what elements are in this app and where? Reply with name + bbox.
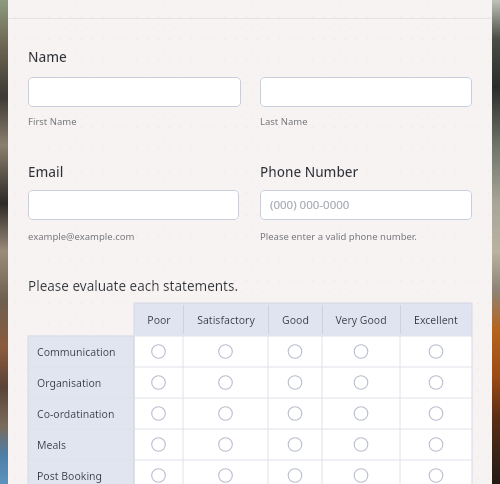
button[interactable]: Meals — Poor — [134, 429, 183, 460]
staticText: example@example.com — [28, 230, 135, 243]
staticText: Communication — [37, 345, 116, 359]
button[interactable]: Co-ordatination — Satisfactory — [183, 398, 268, 429]
button[interactable]: Communication — Satisfactory — [183, 336, 268, 367]
button[interactable]: Poor — [134, 303, 183, 336]
staticText: Please evaluate each statements. — [28, 277, 239, 295]
button[interactable]: Phone Number input — [260, 190, 472, 220]
staticText: Meals — [37, 438, 67, 452]
staticText: Phone Number — [260, 163, 359, 181]
button[interactable]: Organisation — Poor — [134, 367, 183, 398]
button[interactable]: First Name input — [28, 77, 241, 107]
staticText: Organisation — [37, 376, 102, 390]
staticText: Good — [282, 313, 309, 327]
staticText: Satisfactory — [197, 313, 255, 327]
button[interactable]: Meals — Excellent — [400, 429, 472, 460]
button[interactable]: Organisation — [28, 367, 134, 398]
button[interactable]: Communication — Good — [268, 336, 322, 367]
button[interactable]: Post Booking — Good — [268, 460, 322, 484]
button[interactable]: Co-ordatination — Very Good — [322, 398, 400, 429]
button[interactable]: Meals — Very Good — [322, 429, 400, 460]
button[interactable]: Post Booking — Very Good — [322, 460, 400, 484]
button[interactable]: Organisation — Excellent — [400, 367, 472, 398]
button[interactable]: Good — [268, 303, 322, 336]
button[interactable]: Communication — Very Good — [322, 336, 400, 367]
button[interactable]: Organisation — Good — [268, 367, 322, 398]
button[interactable]: Communication — Excellent — [400, 336, 472, 367]
button[interactable]: Organisation — Satisfactory — [183, 367, 268, 398]
staticText: Last Name — [260, 115, 308, 128]
staticText: Name — [28, 48, 67, 66]
staticText: First Name — [28, 115, 77, 128]
button[interactable]: Co-ordatination — Good — [268, 398, 322, 429]
button[interactable]: Very Good — [322, 303, 400, 336]
button[interactable]: Organisation — Very Good — [322, 367, 400, 398]
button[interactable]: Post Booking — Excellent — [400, 460, 472, 484]
staticText: Excellent — [414, 313, 458, 327]
staticText: Post Booking — [37, 469, 103, 483]
button[interactable]: Co-ordatination — Poor — [134, 398, 183, 429]
staticText: Poor — [147, 313, 171, 327]
button[interactable]: Meals — Good — [268, 429, 322, 460]
staticText: Very Good — [335, 313, 387, 327]
button[interactable]: Post Booking — Satisfactory — [183, 460, 268, 484]
button[interactable]: Co-ordatination — [28, 398, 134, 429]
button[interactable]: Post Booking — Poor — [134, 460, 183, 484]
button[interactable]: Co-ordatination — Excellent — [400, 398, 472, 429]
button[interactable]: Meals — [28, 429, 134, 460]
staticText: Please enter a valid phone number. — [260, 230, 417, 243]
staticText: Co-ordatination — [37, 407, 115, 421]
button[interactable]: Post Booking — [28, 460, 134, 484]
button[interactable]: Last Name input — [260, 77, 472, 107]
staticText: Email — [28, 163, 64, 181]
button[interactable]: Excellent — [400, 303, 472, 336]
staticText: (000) 000-0000 — [270, 197, 350, 213]
button[interactable]: Email input — [28, 190, 239, 220]
button[interactable]: Communication — Poor — [134, 336, 183, 367]
button[interactable]: Communication — [28, 336, 134, 367]
button[interactable]: Satisfactory — [183, 303, 268, 336]
button[interactable]: Meals — Satisfactory — [183, 429, 268, 460]
